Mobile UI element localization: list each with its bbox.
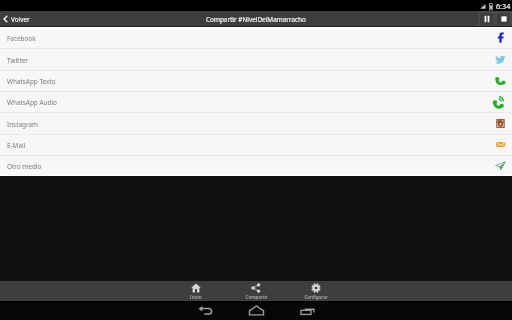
staticText: Configurar [304,294,328,300]
staticText: Facebook [7,34,36,43]
button[interactable]: WhatsApp Audio [0,92,512,113]
staticText: WhatsApp Audio [7,98,57,107]
button[interactable]: Back [180,301,231,320]
button[interactable]: Home [231,301,282,320]
staticText: E-Mail [7,141,26,150]
button[interactable]: WhatsApp Texto [0,71,512,92]
staticText: Instagram [7,120,39,129]
staticText: Otro medio [7,162,42,171]
staticText: Volver [11,15,30,24]
staticText: Compartir [245,294,268,300]
staticText: 6:34 [496,1,511,11]
staticText: Compartir #NivelDelMamarracho [206,15,306,24]
staticText: Inicio [190,294,202,300]
button[interactable]: Pause [479,12,494,26]
button[interactable]: Inicio [166,281,226,301]
button[interactable]: Stop [496,12,511,26]
staticText: Twitter [7,56,28,65]
button[interactable]: Twitter [0,49,512,71]
staticText: WhatsApp Texto [7,77,56,86]
button[interactable]: Volver [0,11,34,27]
button[interactable]: E-Mail [0,135,512,156]
button[interactable]: Facebook [0,27,512,49]
button[interactable]: Compartir [226,281,286,301]
button[interactable]: Instagram [0,113,512,135]
button[interactable]: Otro medio [0,156,512,176]
button[interactable]: Recent apps [282,301,333,320]
button[interactable]: Configurar [286,281,346,301]
